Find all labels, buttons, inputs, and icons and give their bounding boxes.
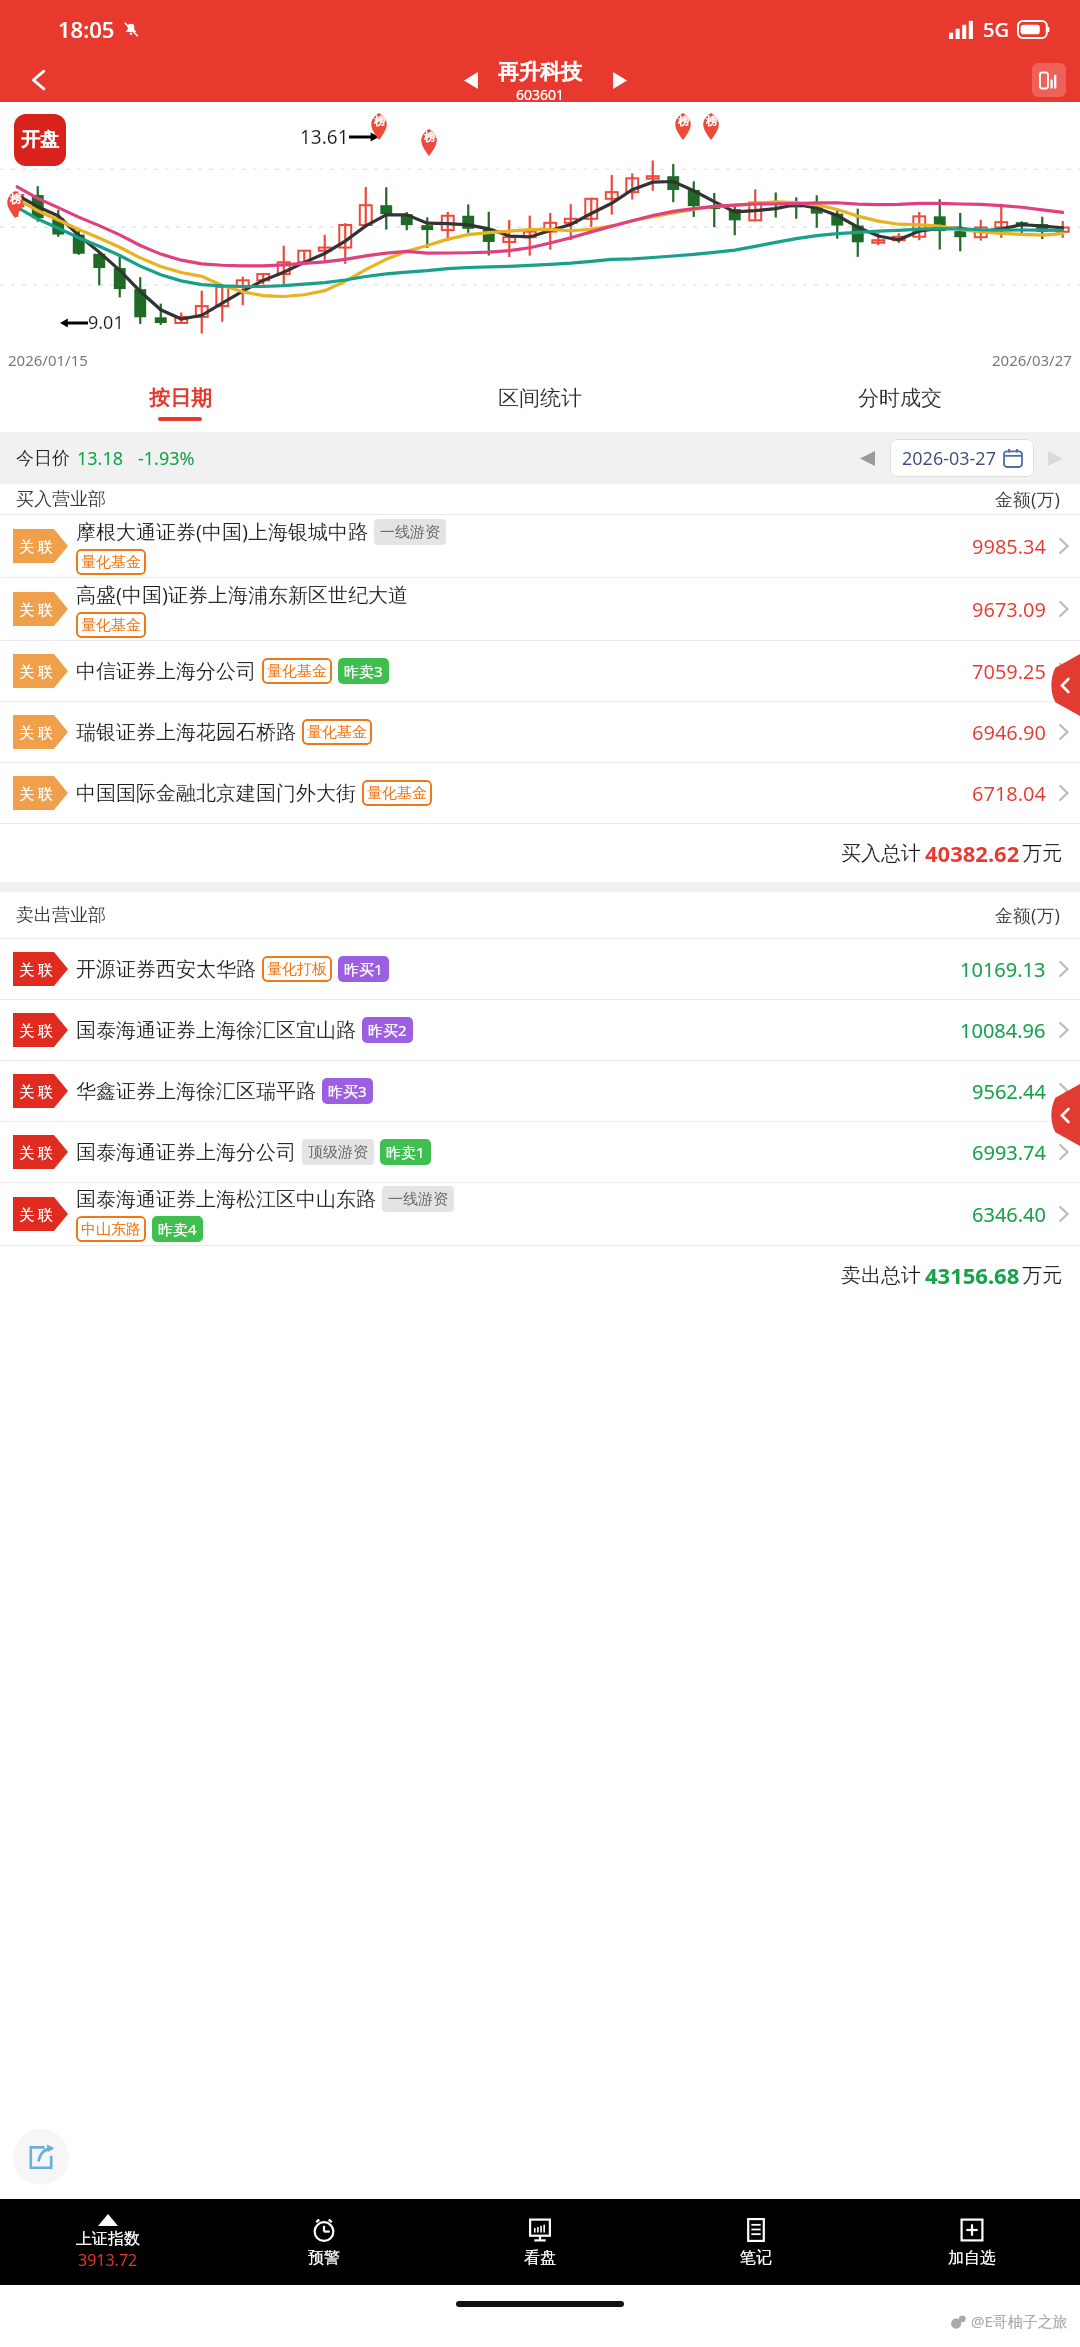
button[interactable]: 看盘 <box>432 2199 648 2285</box>
staticText: 榜 <box>10 192 21 206</box>
button[interactable]: Share <box>13 2129 69 2185</box>
staticText: 2026-03-27 <box>902 446 996 471</box>
staticText: 关 联 <box>19 1020 53 1040</box>
button[interactable]: 关 联 <box>0 1122 1080 1183</box>
button[interactable]: 预警 <box>216 2199 432 2285</box>
button[interactable]: 关 联 <box>0 939 1080 1000</box>
button[interactable]: 区间统计 <box>360 374 720 432</box>
button[interactable]: 2026-03-27 <box>902 439 1022 477</box>
staticText: 10169.13 <box>960 956 1046 983</box>
staticText: 金额(万) <box>995 903 1060 928</box>
button[interactable]: Chart settings <box>1032 63 1066 97</box>
button[interactable]: 加自选 <box>864 2199 1080 2285</box>
staticText: 榜 <box>678 114 689 128</box>
staticText: 9673.09 <box>972 596 1046 623</box>
staticText: 昨卖4 <box>158 1219 197 1239</box>
staticText: 昨买1 <box>344 959 383 979</box>
staticText: 10084.96 <box>960 1017 1046 1044</box>
staticText: 华鑫证券上海徐汇区瑞平路 <box>76 1079 316 1104</box>
button[interactable]: Next day <box>1038 441 1072 475</box>
staticText: 5G <box>983 16 1009 43</box>
staticText: 笔记 <box>740 2248 772 2268</box>
staticText: 区间统计 <box>498 385 582 411</box>
staticText: 开源证券西安太华路 <box>76 957 256 982</box>
staticText: 中信证券上海分公司 <box>76 659 256 684</box>
staticText: 6346.40 <box>972 1201 1046 1228</box>
button[interactable]: Previous day <box>850 441 884 475</box>
staticText: 金额(万) <box>995 487 1060 512</box>
staticText: 2026/03/27 <box>992 350 1072 370</box>
staticText: 昨卖3 <box>344 661 383 681</box>
staticText: 榜 <box>374 114 385 128</box>
staticText: 国泰海通证券上海徐汇区宜山路 <box>76 1018 356 1043</box>
staticText: 6993.74 <box>972 1139 1046 1166</box>
staticText: 高盛(中国)证券上海浦东新区世纪大道 <box>76 581 408 608</box>
staticText: 国泰海通证券上海分公司 <box>76 1140 296 1165</box>
button[interactable]: 关 联 <box>0 578 1080 641</box>
button[interactable]: 按日期 <box>0 374 360 432</box>
staticText: 买入总计 <box>841 841 921 866</box>
staticText: 6946.90 <box>972 719 1046 746</box>
staticText: 量化基金 <box>307 723 367 742</box>
staticText: 关 联 <box>19 1142 53 1162</box>
staticText: 量化基金 <box>81 616 141 635</box>
staticText: 量化基金 <box>267 662 327 681</box>
staticText: @E哥柚子之旅 <box>971 2311 1068 2331</box>
staticText: 中国国际金融北京建国门外大街 <box>76 781 356 806</box>
staticText: 昨买2 <box>368 1020 407 1040</box>
staticText: 再升科技 <box>498 59 582 85</box>
staticText: 40382.62 <box>925 838 1020 868</box>
staticText: 9985.34 <box>972 533 1046 560</box>
button[interactable]: 关 联 <box>0 763 1080 824</box>
staticText: 关 联 <box>19 536 53 556</box>
staticText: 摩根大通证券(中国)上海银城中路 <box>76 518 368 545</box>
button[interactable]: 关 联 <box>0 702 1080 763</box>
staticText: 9562.44 <box>972 1078 1046 1105</box>
staticText: 6718.04 <box>972 780 1046 807</box>
staticText: 13.61 <box>300 124 349 150</box>
staticText: 18:05 <box>58 14 115 44</box>
staticText: 3913.72 <box>78 2249 138 2271</box>
staticText: 顶级游资 <box>308 1143 368 1162</box>
button[interactable]: Back <box>18 59 60 101</box>
button[interactable]: Open panel <box>1050 654 1080 716</box>
button[interactable]: 关 联 <box>0 1183 1080 1246</box>
staticText: 一线游资 <box>380 523 440 542</box>
staticText: 关 联 <box>19 599 53 619</box>
staticText: 万元 <box>1022 1263 1062 1288</box>
staticText: 昨卖1 <box>386 1142 425 1162</box>
staticText: 关 联 <box>19 661 53 681</box>
staticText: 603601 <box>516 85 565 103</box>
button[interactable]: Open panel <box>1050 1084 1080 1146</box>
staticText: -1.93% <box>138 446 195 471</box>
staticText: 国泰海通证券上海松江区中山东路 <box>76 1187 376 1212</box>
staticText: 预警 <box>308 2248 340 2268</box>
button[interactable]: 关 联 <box>0 1000 1080 1061</box>
staticText: 榜 <box>706 114 717 128</box>
staticText: 分时成交 <box>858 385 942 411</box>
staticText: 量化基金 <box>81 553 141 572</box>
button[interactable]: 分时成交 <box>720 374 1080 432</box>
staticText: 买入营业部 <box>16 488 106 511</box>
staticText: 43156.68 <box>925 1260 1020 1290</box>
staticText: 卖出营业部 <box>16 904 106 927</box>
button[interactable]: 关 联 <box>0 1061 1080 1122</box>
button[interactable]: 笔记 <box>648 2199 864 2285</box>
staticText: 量化基金 <box>367 784 427 803</box>
staticText: 量化打板 <box>267 960 327 979</box>
staticText: 关 联 <box>19 1204 53 1224</box>
staticText: 卖出总计 <box>841 1263 921 1288</box>
button[interactable]: Next stock <box>598 60 638 100</box>
staticText: 关 联 <box>19 959 53 979</box>
staticText: 瑞银证券上海花园石桥路 <box>76 720 296 745</box>
staticText: 上证指数 <box>76 2229 140 2249</box>
button[interactable]: 关 联 <box>0 641 1080 702</box>
staticText: 9.01 <box>88 310 124 335</box>
button[interactable]: Previous stock <box>452 60 492 100</box>
staticText: 中山东路 <box>81 1220 141 1239</box>
staticText: 一线游资 <box>388 1190 448 1209</box>
staticText: 关 联 <box>19 722 53 742</box>
button[interactable]: 关 联 <box>0 515 1080 578</box>
staticText: 开盘 <box>17 128 63 152</box>
button[interactable]: 上证指数 <box>0 2199 216 2285</box>
